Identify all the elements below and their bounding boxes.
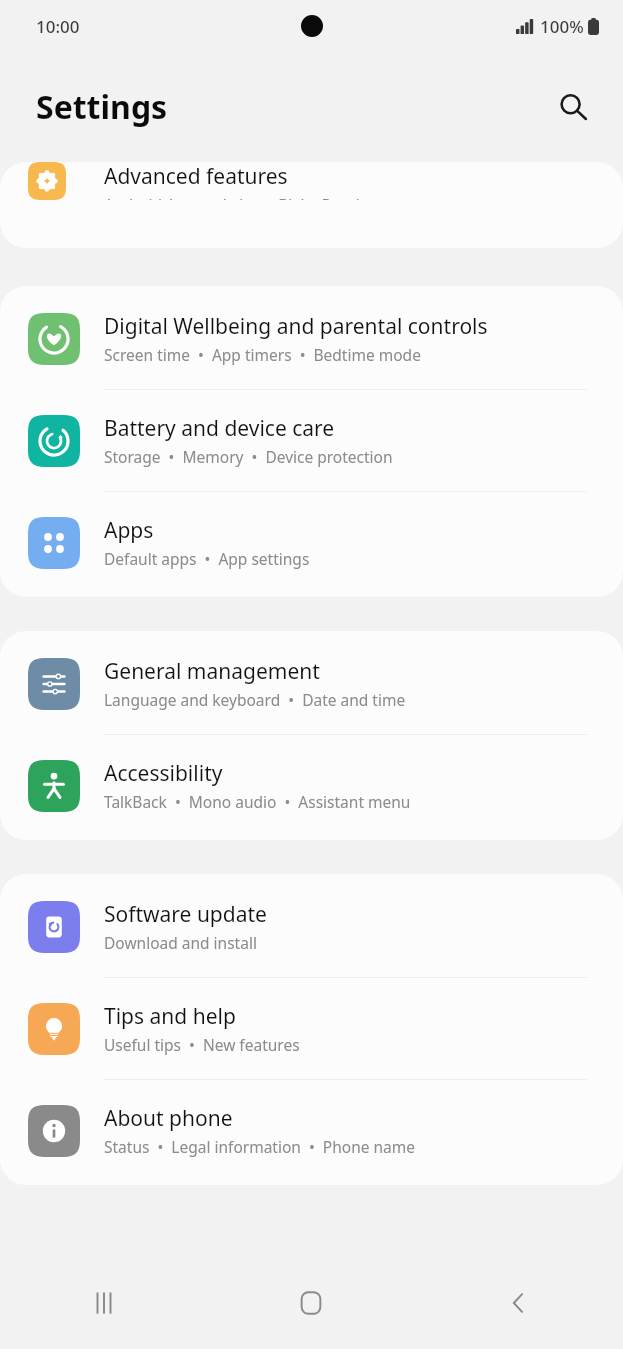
staticText: Storage • Memory • Device protection <box>104 446 393 467</box>
staticText: Accessibility <box>104 759 223 788</box>
staticText: Software update <box>104 900 267 929</box>
button[interactable]: Tips and help <box>0 978 623 1079</box>
staticText: Screen time • App timers • Bedtime mode <box>104 344 421 365</box>
button[interactable]: Recent apps <box>0 1257 207 1349</box>
staticText: 100% <box>540 15 584 38</box>
button[interactable]: Search <box>549 83 597 131</box>
staticText: Battery and device care <box>104 414 335 443</box>
staticText: Apps <box>104 516 154 545</box>
button[interactable]: Advanced features <box>0 162 623 224</box>
staticText: Settings <box>36 85 168 129</box>
staticText: Tips and help <box>104 1002 236 1031</box>
button[interactable]: Software update <box>0 874 623 977</box>
staticText: Language and keyboard • Date and time <box>104 689 406 710</box>
staticText: General management <box>104 657 320 686</box>
staticText: Download and install <box>104 932 257 953</box>
staticText: Status • Legal information • Phone name <box>104 1136 416 1157</box>
staticText: Advanced features <box>104 162 288 191</box>
staticText: Default apps • App settings <box>104 548 310 569</box>
button[interactable]: Back <box>415 1257 623 1349</box>
staticText: About phone <box>104 1104 233 1133</box>
staticText: TalkBack • Mono audio • Assistant menu <box>104 791 411 812</box>
staticText: Android Auto • Labs • Bixby Routines <box>104 194 386 200</box>
button[interactable]: Home <box>207 1257 415 1349</box>
button[interactable]: Accessibility <box>0 735 623 840</box>
button[interactable]: Digital Wellbeing and parental controls <box>0 286 623 389</box>
button[interactable]: Battery and device care <box>0 390 623 491</box>
staticText: 10:00 <box>36 15 80 38</box>
button[interactable]: Apps <box>0 492 623 597</box>
staticText: Digital Wellbeing and parental controls <box>104 312 488 341</box>
staticText: Useful tips • New features <box>104 1034 300 1055</box>
button[interactable]: General management <box>0 631 623 734</box>
button[interactable]: About phone <box>0 1080 623 1185</box>
